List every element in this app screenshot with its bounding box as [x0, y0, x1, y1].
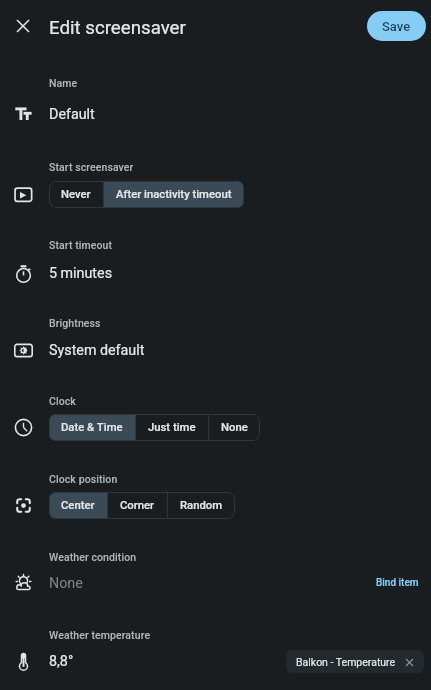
- staticText: After inactivity timeout: [116, 188, 232, 201]
- staticText: Clock position: [49, 473, 118, 485]
- button[interactable]: After inactivity timeout: [104, 181, 244, 208]
- staticText: Brightness: [49, 317, 101, 329]
- staticText: Just time: [148, 421, 196, 434]
- button[interactable]: None: [209, 414, 260, 441]
- staticText: System default: [49, 342, 145, 359]
- staticText: 5 minutes: [49, 265, 113, 282]
- staticText: Random: [180, 499, 223, 512]
- staticText: Balkon - Temperature: [296, 656, 396, 668]
- staticText: Never: [61, 188, 91, 201]
- staticText: None: [221, 421, 248, 434]
- button[interactable]: Date & Time: [49, 414, 135, 441]
- staticText: Start timeout: [49, 239, 113, 251]
- button[interactable]: Corner: [108, 492, 167, 519]
- button[interactable]: Close: [6, 9, 39, 42]
- button[interactable]: Center: [49, 492, 107, 519]
- staticText: Center: [61, 499, 95, 512]
- staticText: None: [49, 575, 83, 592]
- staticText: Weather temperature: [49, 629, 151, 641]
- staticText: 8,8°: [49, 653, 74, 670]
- staticText: Date & Time: [61, 421, 123, 434]
- button[interactable]: Just time: [136, 414, 208, 441]
- staticText: Name: [49, 77, 78, 89]
- button[interactable]: Random: [168, 492, 235, 519]
- staticText: Start screensaver: [49, 161, 134, 173]
- button[interactable]: Bind item: [364, 569, 431, 597]
- button[interactable]: Save: [367, 11, 426, 41]
- staticText: Save: [382, 19, 411, 34]
- button[interactable]: Never: [49, 181, 103, 208]
- staticText: Corner: [120, 499, 155, 512]
- staticText: Edit screensaver: [49, 17, 186, 39]
- button[interactable]: Balkon - Temperature: [286, 650, 424, 673]
- staticText: Weather condition: [49, 551, 137, 563]
- button[interactable]: Remove item: [403, 656, 415, 668]
- staticText: Bind item: [376, 577, 419, 589]
- staticText: Clock: [49, 395, 76, 407]
- staticText: Default: [49, 106, 95, 123]
